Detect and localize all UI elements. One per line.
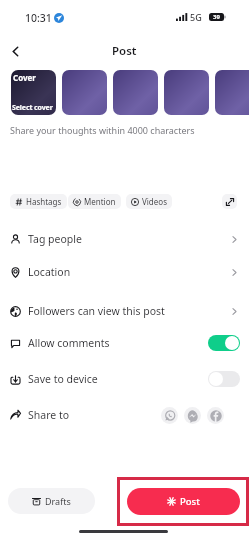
button[interactable] [164,70,209,115]
staticText: Followers can view this post [28,304,165,318]
button[interactable]: Location [0,255,249,289]
staticText: 39 [213,13,220,21]
staticText: Allow comments [28,336,110,350]
staticText: Share to [28,408,70,422]
staticText: Tag people [28,232,82,246]
button[interactable]: Back [4,40,26,62]
button[interactable]: Cover [11,70,56,115]
staticText: 10:31 [25,11,52,25]
staticText: Post [112,43,137,59]
staticText: Mention [84,196,116,207]
button[interactable]: Followers can view this post [0,294,249,328]
button[interactable]: Hashtags [10,194,67,209]
button[interactable]: Post [127,488,240,515]
button[interactable]: Tag people [0,222,249,256]
staticText: Hashtags [26,196,62,207]
button[interactable]: WhatsApp [161,407,178,424]
staticText: Cover [13,72,36,83]
button[interactable] [62,70,107,115]
staticText: Select cover [12,103,53,113]
staticText: Post [180,495,200,508]
button[interactable]: Videos [126,194,172,209]
button[interactable] [113,70,158,115]
button[interactable]: Save to device [0,362,249,396]
button[interactable]: Drafts [8,488,95,514]
staticText: Save to device [28,372,98,386]
button[interactable]: Expand [222,194,237,209]
button[interactable]: Messenger [184,407,201,424]
button[interactable]: Allow comments [0,326,249,360]
staticText: Videos [142,196,167,207]
staticText: Location [28,265,71,279]
button[interactable] [215,70,249,115]
staticText: 5G [190,11,202,23]
button[interactable]: Mention [68,194,121,209]
button[interactable]: Facebook [207,407,224,424]
staticText: Share your thoughts within 4000 characte… [10,124,195,136]
staticText: Drafts [45,495,71,507]
